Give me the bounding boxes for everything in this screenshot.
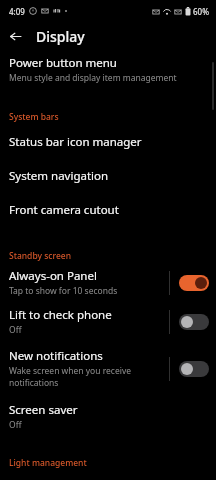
button[interactable]: Toggle off xyxy=(179,314,209,330)
staticText: Front camera cutout xyxy=(9,202,119,218)
staticText: 60% xyxy=(193,6,209,17)
staticText: Status bar icon manager xyxy=(9,134,142,150)
staticText: Menu style and display item management xyxy=(9,72,177,84)
staticText: Power button menu xyxy=(9,55,117,71)
button[interactable]: Toggle off xyxy=(179,361,209,377)
button[interactable]: Always-on Panel xyxy=(0,264,216,301)
button[interactable]: Power button menu xyxy=(0,50,216,89)
staticText: Wake screen when you receive notificatio… xyxy=(9,365,165,389)
button[interactable]: Toggle on xyxy=(179,275,209,291)
button[interactable]: Back xyxy=(4,25,26,47)
staticText: Off xyxy=(9,419,22,431)
staticText: Tap to show for 10 seconds xyxy=(9,285,118,297)
staticText: System navigation xyxy=(9,168,109,184)
button[interactable]: Screen saver xyxy=(0,395,216,435)
button[interactable]: System navigation xyxy=(0,159,216,193)
staticText: Standby screen xyxy=(9,250,72,262)
staticText: 4:09 xyxy=(9,6,25,17)
button[interactable]: Front camera cutout xyxy=(0,193,216,227)
staticText: Display xyxy=(36,27,85,46)
button[interactable]: New notifications xyxy=(0,342,216,395)
staticText: Light management xyxy=(9,457,87,469)
button[interactable]: Lift to check phone xyxy=(0,301,216,342)
staticText: System bars xyxy=(9,111,59,123)
staticText: Off xyxy=(9,324,22,336)
staticText: Always-on Panel xyxy=(9,268,97,284)
staticText: Screen saver xyxy=(9,402,78,418)
staticText: Lift to check phone xyxy=(9,307,112,323)
button[interactable]: Status bar icon manager xyxy=(0,125,216,159)
staticText: New notifications xyxy=(9,348,103,364)
